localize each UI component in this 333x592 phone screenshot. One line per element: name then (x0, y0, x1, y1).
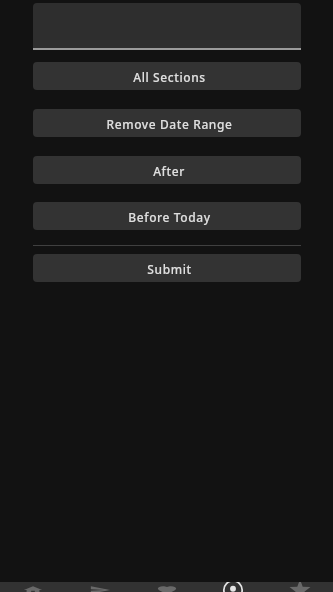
button[interactable]: Favorites (134, 582, 200, 592)
staticText: After (153, 163, 185, 179)
button[interactable]: Home (0, 582, 66, 592)
button[interactable]: After (33, 156, 301, 184)
button[interactable]: Before Today (33, 202, 301, 230)
button[interactable]: All Sections (33, 62, 301, 90)
button[interactable]: Account (200, 582, 266, 592)
button[interactable]: Starred (267, 582, 333, 592)
button[interactable]: Send (67, 582, 133, 592)
staticText: Before Today (128, 209, 211, 225)
staticText: Remove Date Range (106, 116, 233, 132)
staticText: All Sections (133, 69, 206, 85)
button[interactable]: Remove Date Range (33, 109, 301, 137)
button[interactable]: Submit (33, 254, 301, 282)
staticText: Submit (147, 261, 192, 277)
